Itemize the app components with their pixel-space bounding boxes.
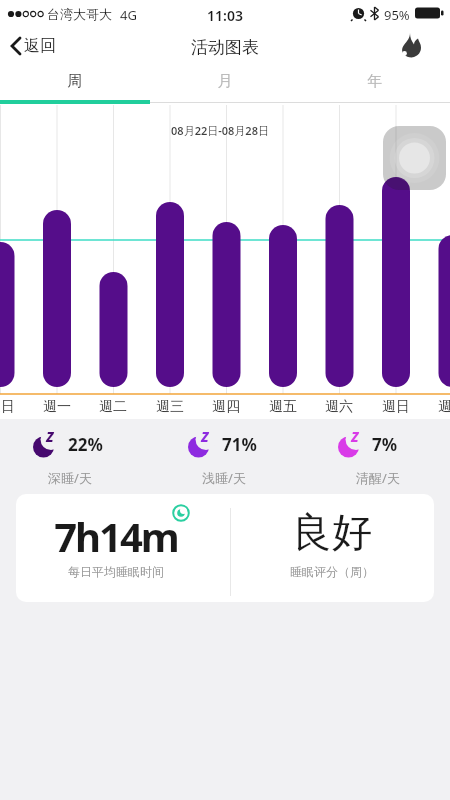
staticText: 週四 <box>198 398 254 416</box>
staticText: 週二 <box>85 398 141 416</box>
staticText: 浅睡/天 <box>188 469 260 487</box>
staticText: 週日 <box>424 398 450 416</box>
button[interactable] <box>383 126 446 190</box>
staticText: 每日平均睡眠时间 <box>16 564 216 579</box>
staticText: 睡眠评分（周） <box>232 564 432 579</box>
staticText: 週五 <box>255 398 311 416</box>
staticText: 22% <box>68 433 128 456</box>
staticText: 7h14m <box>16 509 216 563</box>
staticText: 7% <box>372 433 432 456</box>
staticText: 4G <box>120 6 150 24</box>
staticText: 週三 <box>142 398 198 416</box>
staticText: 71% <box>222 433 282 456</box>
staticText: 良好 <box>232 507 432 557</box>
button[interactable]: 年 <box>300 72 450 91</box>
staticText: z <box>46 424 54 447</box>
staticText: 清醒/天 <box>342 469 414 487</box>
staticText: 11:03 <box>185 6 265 25</box>
staticText: 返回 <box>24 36 56 56</box>
staticText: 深睡/天 <box>34 469 106 487</box>
staticText: z <box>351 424 359 447</box>
staticText: 週日 <box>368 398 424 416</box>
staticText: 週日 <box>0 398 29 416</box>
staticText: 週六 <box>311 398 367 416</box>
button[interactable]: 返回 <box>6 33 76 63</box>
staticText: z <box>201 424 209 447</box>
staticText: 95% <box>384 6 414 24</box>
staticText: 活动图表 <box>145 37 305 58</box>
button[interactable]: 月 <box>150 72 300 91</box>
button[interactable]: 周 <box>0 72 150 91</box>
button[interactable]: 7h14m <box>16 494 434 602</box>
button[interactable] <box>398 30 430 64</box>
staticText: 08月22日-08月28日 <box>130 123 310 138</box>
staticText: 台湾大哥大 <box>47 6 119 22</box>
staticText: 週一 <box>29 398 85 416</box>
